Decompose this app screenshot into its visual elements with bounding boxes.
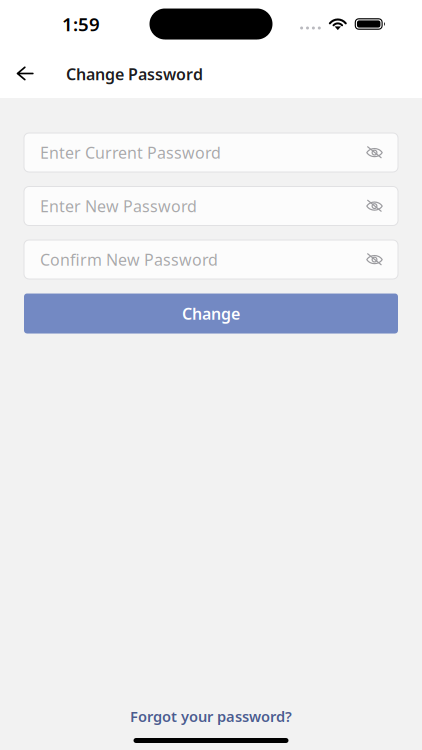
staticText: Enter New Password: [40, 195, 197, 217]
button[interactable]: Show Enter Current Password: [358, 136, 391, 169]
staticText: Change Password: [66, 63, 203, 85]
button[interactable]: Enter New Password: [24, 186, 398, 225]
staticText: 1:59: [62, 12, 100, 36]
button[interactable]: Change: [24, 293, 398, 333]
staticText: Change: [182, 303, 240, 324]
button[interactable]: Back: [3, 51, 47, 95]
staticText: Enter Current Password: [40, 142, 221, 163]
button[interactable]: Forgot your password?: [120, 702, 302, 730]
button[interactable]: Confirm New Password: [24, 240, 398, 279]
button[interactable]: Enter Current Password: [24, 133, 398, 172]
button[interactable]: Show Enter New Password: [358, 189, 391, 222]
button[interactable]: Show Confirm New Password: [358, 243, 391, 276]
staticText: Forgot your password?: [130, 706, 292, 726]
staticText: Confirm New Password: [40, 249, 218, 270]
